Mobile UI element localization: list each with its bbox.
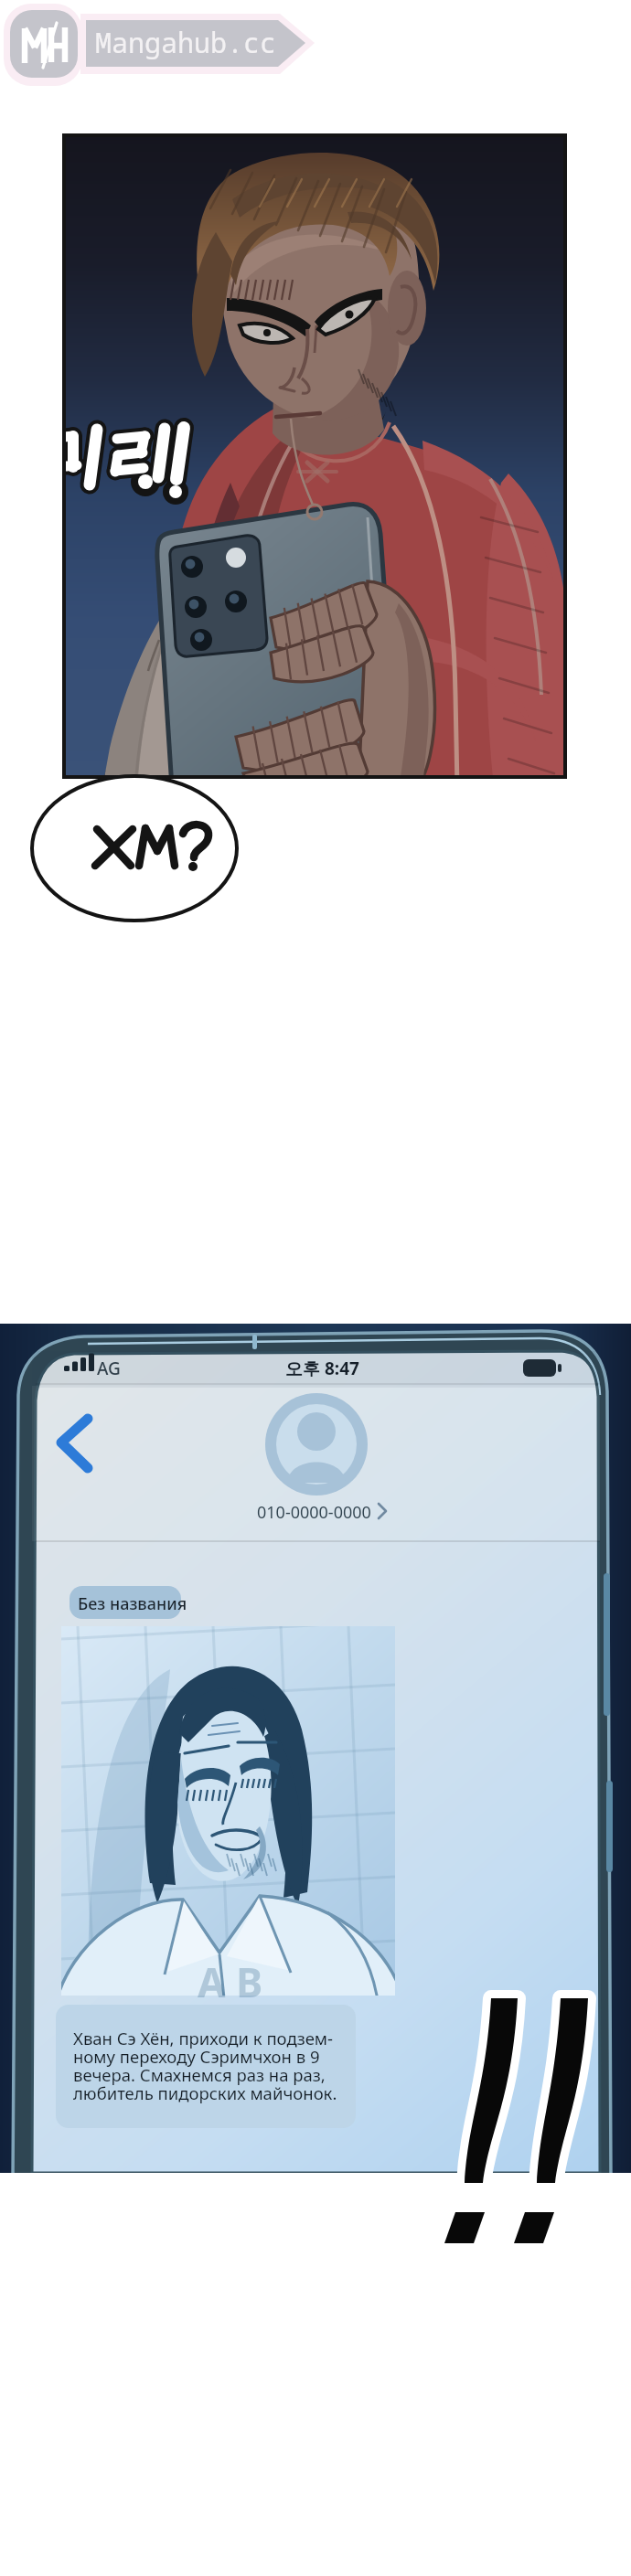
button[interactable]: Contact 010-0000-0000 (256, 1393, 386, 1527)
button[interactable]: Mangahub.cc home (4, 4, 315, 86)
staticText: Хван Сэ Хён, приходи к подзем- ному пере… (73, 2027, 337, 2104)
staticText: AG (97, 1357, 121, 1380)
button[interactable]: Message from 010-0000-0000 (56, 2005, 356, 2128)
staticText: 오후 8:47 (285, 1357, 359, 1380)
button[interactable]: Back (51, 1408, 104, 1492)
staticText: 010-0000-0000 (257, 1501, 371, 1524)
button[interactable]: Webtoon page (0, 0, 631, 2576)
button[interactable]: Attached photo (61, 1626, 395, 1996)
staticText: Mangahub.cc (95, 24, 276, 61)
staticText: A B (198, 1954, 263, 2009)
staticText: Без названия (78, 1592, 187, 1615)
